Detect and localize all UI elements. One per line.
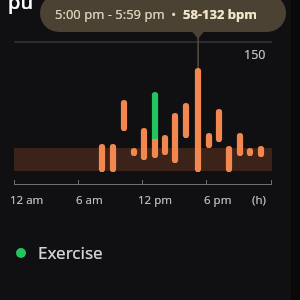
button[interactable]: Heart rate chart [0, 0, 300, 300]
